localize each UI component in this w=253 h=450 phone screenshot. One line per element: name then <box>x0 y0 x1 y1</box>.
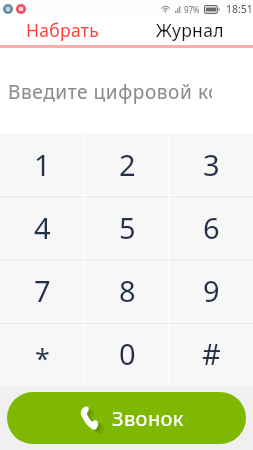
button[interactable]: Call <box>7 392 246 444</box>
other: Call <box>80 406 99 431</box>
staticText: 4 <box>34 208 51 247</box>
button[interactable]: # <box>169 323 253 386</box>
button[interactable]: 5 <box>85 197 169 260</box>
staticText: 18:51 <box>226 2 253 16</box>
staticText: 8 <box>119 271 136 310</box>
staticText: 3 <box>203 145 220 184</box>
button[interactable]: * <box>0 323 85 386</box>
staticText: 1 <box>34 145 51 184</box>
button[interactable]: 4 <box>0 197 85 260</box>
staticText: # <box>202 334 221 373</box>
button[interactable]: 8 <box>85 260 169 323</box>
button[interactable]: 0 <box>85 323 169 386</box>
staticText: 7 <box>34 271 51 310</box>
button[interactable]: 1 <box>0 133 85 197</box>
button[interactable]: 7 <box>0 260 85 323</box>
staticText: 2 <box>119 145 136 184</box>
button[interactable]: Журнал <box>126 18 253 48</box>
staticText: Введите цифровой код <box>8 79 212 104</box>
staticText: 97% <box>184 4 200 15</box>
staticText: Журнал <box>156 18 224 42</box>
staticText: Звонок <box>112 405 184 432</box>
staticText: 5 <box>119 208 136 247</box>
button[interactable]: 2 <box>85 133 169 197</box>
staticText: 9 <box>203 271 220 310</box>
staticText: 6 <box>203 208 220 247</box>
staticText: * <box>35 340 50 377</box>
button[interactable]: Набрать <box>0 18 126 48</box>
button[interactable]: 6 <box>169 197 253 260</box>
button[interactable]: 3 <box>169 133 253 197</box>
button[interactable]: 9 <box>169 260 253 323</box>
staticText: 0 <box>119 334 136 373</box>
staticText: Набрать <box>26 18 100 42</box>
